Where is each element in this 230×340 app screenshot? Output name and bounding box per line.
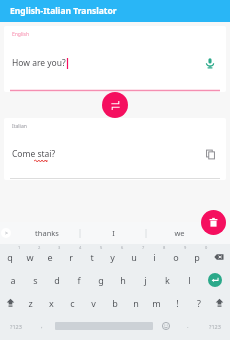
button[interactable]: g xyxy=(90,270,112,289)
button[interactable]: we xyxy=(147,222,212,244)
button[interactable]: t xyxy=(81,247,102,266)
staticText: 6 xyxy=(121,245,124,250)
button[interactable]: h xyxy=(112,270,134,289)
button[interactable]: f xyxy=(68,270,90,289)
button[interactable]: Voice input xyxy=(202,55,218,71)
staticText: 8 xyxy=(163,245,166,250)
button[interactable]: More suggestions xyxy=(1,228,11,238)
staticText: f xyxy=(77,274,81,286)
button[interactable]: Copy translation xyxy=(202,146,218,162)
staticText: I xyxy=(112,228,115,238)
button[interactable]: ! xyxy=(167,293,188,312)
staticText: n xyxy=(133,297,139,309)
button[interactable]: p xyxy=(186,247,207,266)
button[interactable]: d xyxy=(46,270,68,289)
staticText: , xyxy=(41,322,43,330)
staticText: ?123 xyxy=(10,323,22,330)
staticText: English-Italian Translator xyxy=(10,5,117,17)
staticText: How are you? xyxy=(12,57,66,69)
staticText: y xyxy=(110,251,115,263)
staticText: t xyxy=(90,251,94,263)
button[interactable]: Swap languages xyxy=(102,92,128,118)
staticText: > xyxy=(5,230,8,237)
button[interactable]: thanks xyxy=(14,222,80,244)
button[interactable]: q xyxy=(0,247,20,266)
button[interactable]: e xyxy=(40,247,60,266)
staticText: z xyxy=(28,297,33,309)
staticText: r xyxy=(69,251,73,263)
staticText: o xyxy=(173,251,179,263)
button[interactable]: ? xyxy=(188,293,209,312)
button[interactable]: Italian xyxy=(4,118,226,180)
staticText: ? xyxy=(197,297,201,309)
staticText: s xyxy=(33,274,38,286)
button[interactable]: l xyxy=(178,270,200,289)
button[interactable]: ?123 xyxy=(0,317,31,335)
staticText: e xyxy=(47,251,53,263)
staticText: 5 xyxy=(100,245,103,250)
button[interactable]: English xyxy=(4,26,226,92)
staticText: ?123 xyxy=(209,323,221,330)
staticText: a xyxy=(10,274,16,286)
button[interactable]: I xyxy=(81,222,146,244)
button[interactable]: z xyxy=(20,293,41,312)
staticText: Italian xyxy=(12,123,27,130)
button[interactable]: Emoji xyxy=(155,317,177,335)
staticText: c xyxy=(70,297,75,309)
button[interactable]: Shift xyxy=(0,293,20,312)
button[interactable]: ?123 xyxy=(199,317,230,335)
button[interactable]: y xyxy=(102,247,123,266)
button[interactable]: s xyxy=(24,270,46,289)
staticText: 0 xyxy=(205,245,208,250)
staticText: 7 xyxy=(142,245,145,250)
staticText: j xyxy=(144,274,147,286)
staticText: h xyxy=(120,274,126,286)
button[interactable]: a xyxy=(2,270,24,289)
staticText: 2 xyxy=(38,245,41,250)
button[interactable]: x xyxy=(41,293,62,312)
button[interactable]: Clear text xyxy=(201,210,226,235)
button[interactable]: u xyxy=(123,247,144,266)
button[interactable]: n xyxy=(125,293,146,312)
staticText: 1 xyxy=(18,245,21,250)
staticText: i xyxy=(153,251,156,263)
staticText: p xyxy=(194,251,200,263)
button[interactable]: j xyxy=(134,270,156,289)
staticText: . xyxy=(187,322,189,330)
staticText: 3 xyxy=(58,245,61,250)
button[interactable]: i xyxy=(144,247,165,266)
button[interactable]: w xyxy=(20,247,40,266)
staticText: v xyxy=(91,297,96,309)
staticText: u xyxy=(131,251,137,263)
button[interactable]: o xyxy=(165,247,186,266)
button[interactable]: Enter xyxy=(208,273,222,287)
staticText: English xyxy=(12,31,30,38)
staticText: q xyxy=(7,251,13,263)
staticText: l xyxy=(188,274,191,286)
staticText: we xyxy=(174,228,185,238)
staticText: k xyxy=(165,274,170,286)
button[interactable]: r xyxy=(60,247,81,266)
staticText: Come stai? xyxy=(12,148,56,160)
button[interactable]: Shift xyxy=(209,293,230,312)
staticText: g xyxy=(98,274,104,286)
button[interactable]: m xyxy=(146,293,167,312)
button[interactable]: Backspace xyxy=(207,247,230,266)
staticText: w xyxy=(26,251,34,263)
staticText: b xyxy=(112,297,118,309)
staticText: 4 xyxy=(79,245,82,250)
button[interactable]: b xyxy=(104,293,125,312)
button[interactable]: k xyxy=(156,270,178,289)
staticText: 9 xyxy=(184,245,187,250)
staticText: ! xyxy=(176,297,179,309)
button[interactable]: v xyxy=(83,293,104,312)
staticText: thanks xyxy=(35,228,59,238)
staticText: x xyxy=(49,297,54,309)
button[interactable]: c xyxy=(62,293,83,312)
staticText: d xyxy=(54,274,60,286)
staticText: m xyxy=(152,297,161,309)
